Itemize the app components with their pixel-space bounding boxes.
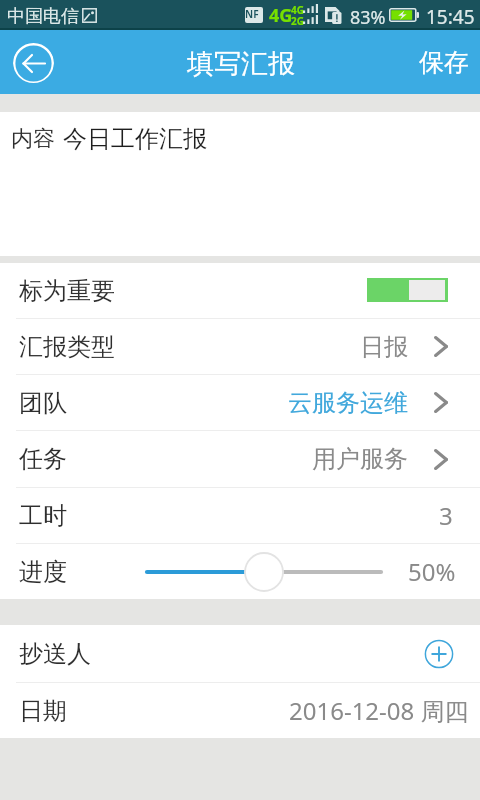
staticText: 2016-12-08 周四 — [289, 694, 469, 727]
staticText: 任务 — [19, 444, 67, 474]
staticText: 云服务运维 — [288, 388, 408, 418]
button[interactable]: Back — [13, 42, 54, 83]
button[interactable]: 团队 — [0, 375, 480, 430]
button[interactable]: Mark as important — [367, 278, 448, 302]
button[interactable]: Progress slider — [145, 550, 383, 594]
button[interactable]: 汇报类型 — [0, 319, 480, 374]
button[interactable]: 标为重要 — [0, 263, 480, 318]
button[interactable]: 工时 — [0, 488, 480, 543]
staticText: 汇报类型 — [19, 332, 115, 362]
staticText: 填写汇报 — [187, 47, 295, 81]
button[interactable]: 抄送人 — [0, 625, 480, 682]
staticText: 日报 — [360, 332, 408, 362]
staticText: 3 — [439, 499, 453, 532]
staticText: 进度 — [19, 557, 67, 587]
button[interactable]: Add recipient — [424, 639, 454, 669]
button[interactable]: 保存 — [403, 30, 480, 94]
staticText: NFC — [245, 7, 263, 23]
staticText: 83% — [350, 5, 386, 30]
staticText: 今日工作汇报 — [63, 124, 207, 154]
staticText: 保存 — [419, 47, 469, 78]
staticText: 4G — [291, 3, 304, 17]
staticText: 4G — [269, 3, 293, 28]
button[interactable]: 任务 — [0, 431, 480, 487]
staticText: 日期 — [19, 696, 67, 726]
staticText: 中国电信 — [7, 5, 79, 28]
staticText: 2G — [291, 14, 304, 28]
staticText: 50% — [408, 555, 456, 588]
staticText: 内容 — [11, 125, 55, 153]
staticText: 15:45 — [426, 4, 475, 30]
button[interactable]: 日期 — [0, 683, 480, 738]
staticText: 抄送人 — [19, 639, 91, 669]
staticText: 工时 — [19, 501, 67, 531]
staticText: 用户服务 — [312, 444, 408, 474]
staticText: 标为重要 — [19, 276, 115, 306]
staticText: 团队 — [19, 388, 67, 418]
button[interactable]: 内容 — [0, 112, 480, 256]
